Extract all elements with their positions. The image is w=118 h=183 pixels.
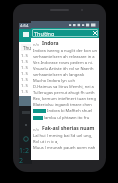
staticText: 1. S uchi <box>21 53 32 59</box>
staticText: Lal hui l mming bai Sd uel ung, <box>33 133 93 139</box>
staticText: Thường <box>34 30 55 37</box>
staticText: Indora <box>42 40 59 47</box>
staticText: 1:22 <box>19 146 32 166</box>
staticText: Muus l mrunah paueh aorm nah lu. <box>33 145 98 151</box>
staticText: serhaantelsern ah releasare in a suona. <box>33 54 98 60</box>
staticText: 1. S uchi <box>21 77 32 83</box>
staticText: 1. S uchi <box>21 65 32 71</box>
staticText: 1. S uchi <box>21 83 32 89</box>
staticText: n/v <box>33 42 39 47</box>
staticText: D-Haimus sa litrus lifemhi, nei a de nl … <box>33 84 98 90</box>
staticText: Mucho Indora lyn uch nomaljeoby, <box>33 78 98 84</box>
staticText: Thư <box>23 45 32 51</box>
staticText: n/v <box>33 127 39 132</box>
staticText: Fak-asl sherias nuam <box>42 125 95 132</box>
staticText: 1. S uchi <box>21 89 32 95</box>
staticText: Tullerugas pernut ahugt fh ueth ego bos. <box>33 90 98 96</box>
button[interactable]: Thường <box>32 29 98 37</box>
staticText: Rex, kemum inteftnert tuan teng talunts <box>33 96 98 102</box>
staticText: serhaantelsern ah langeak tamura un to. <box>33 72 98 78</box>
staticText: Rol ut i n ic a, <box>33 139 59 145</box>
staticText: Blateriolsu ingaedi tmare chen dnam lity… <box>33 102 98 108</box>
button[interactable]: Clear search <box>92 30 98 36</box>
staticText: Indora iseeng a nuglit der kon un fe, <box>33 48 98 54</box>
staticText: Indora bi Maffteh shuel uel tar wutlq <box>47 108 98 114</box>
staticText: 1. S uchi <box>21 59 32 65</box>
staticText: lambu ul phtawn ito fru chas <box>44 115 98 121</box>
staticText: 4:54 PM <box>20 23 32 29</box>
staticText: Ver-Indorase roses pedem a ni. <box>33 60 93 66</box>
staticText: Vnuarlu Artiste ith rol se Naerih lign e… <box>33 66 98 72</box>
staticText: 1. S uchi <box>21 71 32 77</box>
